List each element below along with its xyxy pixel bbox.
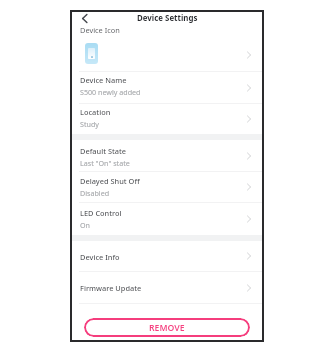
staticText: Delayed Shut Off (80, 176, 140, 186)
staticText: Device Icon (80, 25, 120, 34)
staticText: Default State (80, 146, 127, 156)
staticText: Last "On" state (80, 158, 130, 168)
staticText: Device Name (80, 75, 127, 85)
staticText: LED Control (80, 208, 122, 218)
button[interactable]: Default State (71, 140, 263, 171)
button[interactable]: Device Icon (71, 26, 263, 71)
staticText: On (80, 220, 90, 230)
button[interactable]: REMOVE (84, 318, 250, 337)
staticText: Device Info (80, 252, 120, 262)
button[interactable]: Back (78, 11, 91, 26)
button[interactable]: Firmware Update (71, 272, 263, 303)
staticText: Disabled (80, 188, 110, 198)
staticText: Firmware Update (80, 283, 142, 293)
button[interactable]: LED Control (71, 203, 263, 235)
button[interactable]: Device Info (71, 241, 263, 271)
staticText: S500 newly added (80, 87, 141, 97)
button[interactable]: Location (71, 104, 263, 134)
staticText: REMOVE (149, 322, 185, 334)
staticText: Device Settings (137, 13, 198, 24)
button[interactable]: Device Name (71, 72, 263, 103)
staticText: Study (80, 119, 99, 129)
staticText: Location (80, 107, 111, 117)
button[interactable]: Delayed Shut Off (71, 172, 263, 202)
